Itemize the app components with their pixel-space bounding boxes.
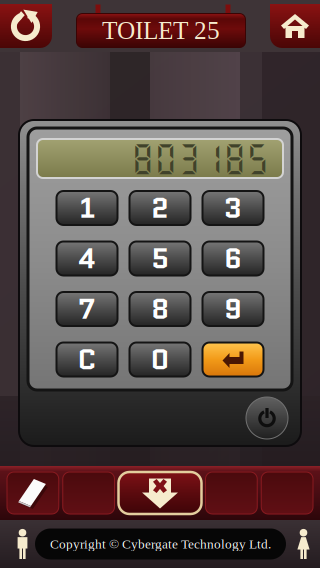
staticText: 0 [150, 339, 169, 379]
staticText: 6 [224, 238, 242, 278]
staticText: C [77, 339, 96, 379]
button[interactable]: 2 [129, 191, 190, 225]
button[interactable]: 8 [129, 292, 190, 326]
staticText: 9 [224, 289, 242, 329]
button[interactable]: 1 [56, 191, 117, 225]
button[interactable]: Empty slot [261, 472, 313, 514]
button[interactable]: Paper item [7, 472, 59, 514]
button[interactable]: 3 [202, 191, 263, 225]
button[interactable]: C [56, 342, 117, 376]
staticText: 4 [78, 238, 96, 278]
button[interactable]: Enter [202, 342, 263, 376]
button[interactable]: Restart [0, 4, 52, 48]
staticText: 803185 [131, 140, 269, 177]
button[interactable]: 7 [56, 292, 117, 326]
button[interactable]: Power [243, 394, 291, 442]
button[interactable]: 4 [56, 241, 117, 275]
staticText: 2 [151, 188, 169, 228]
button[interactable]: Close [118, 472, 201, 514]
button[interactable]: 5 [129, 241, 190, 275]
staticText: Copyright © Cybergate Technology Ltd. [50, 537, 271, 551]
staticText: 5 [151, 238, 169, 278]
staticText: 7 [78, 289, 96, 329]
staticText: 8 [151, 289, 169, 329]
button[interactable]: 9 [202, 292, 263, 326]
staticText: TOILET 25 [102, 16, 220, 45]
button[interactable]: 6 [202, 241, 263, 275]
staticText: 3 [223, 188, 242, 228]
button[interactable]: Home [270, 4, 320, 48]
button[interactable]: 0 [129, 342, 190, 376]
button[interactable]: Empty slot [205, 472, 257, 514]
button[interactable]: Empty slot [63, 472, 115, 514]
staticText: 1 [79, 188, 95, 228]
